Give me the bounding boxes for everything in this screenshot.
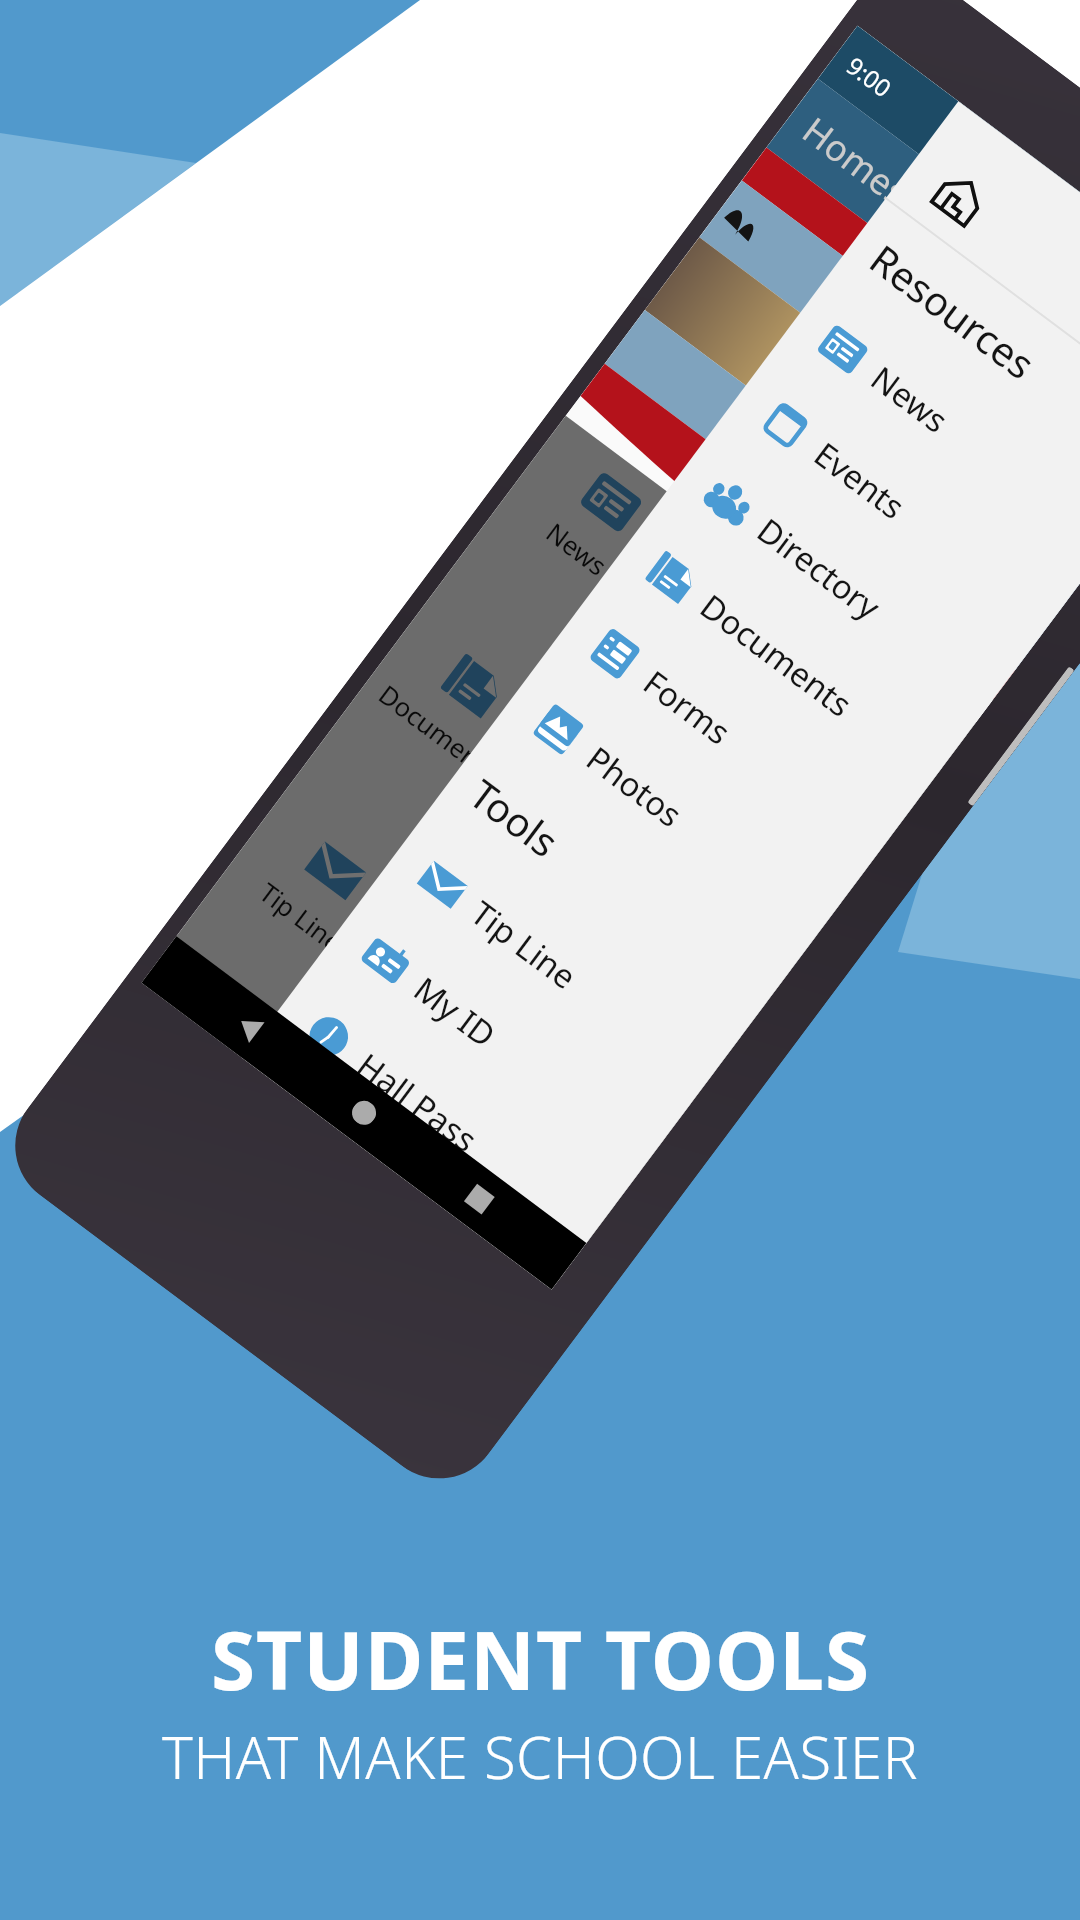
- button[interactable]: News: [770, 277, 1080, 585]
- button[interactable]: News: [493, 427, 698, 619]
- staticText: Events: [805, 432, 914, 529]
- staticText: News: [862, 356, 957, 442]
- button[interactable]: Documents: [355, 611, 560, 803]
- staticText: THAT MAKE SCHOOL EASIER: [162, 1717, 918, 1796]
- button[interactable]: Documents: [599, 506, 965, 813]
- button[interactable]: Back: [207, 985, 292, 1069]
- button[interactable]: Recent apps: [437, 1157, 521, 1241]
- button[interactable]: Directory: [656, 430, 1022, 737]
- staticText: News: [540, 514, 614, 583]
- staticText: HOMESTEAD: [706, 388, 954, 594]
- staticText: Tip Line: [253, 874, 350, 959]
- button[interactable]: Home: [322, 1071, 406, 1155]
- staticText: Documents: [372, 676, 506, 789]
- staticText: Tip Line: [462, 890, 586, 999]
- staticText: Tools: [460, 766, 570, 868]
- staticText: Documents: [692, 584, 861, 726]
- staticText: Hall Pass: [348, 1043, 487, 1162]
- button[interactable]: Events: [713, 354, 1079, 661]
- button[interactable]: My ID: [313, 888, 679, 1196]
- staticText: Homestead: [793, 106, 979, 262]
- staticText: Resources: [860, 232, 1047, 390]
- staticText: Forms: [635, 660, 740, 755]
- button[interactable]: Hall Pass: [256, 964, 622, 1272]
- button[interactable]: Tip Line: [217, 795, 423, 987]
- staticText: Directory: [748, 508, 890, 629]
- button[interactable]: Photos: [485, 658, 851, 965]
- staticText: Cherry Creek School: [857, 306, 1026, 442]
- button[interactable]: Tip Line: [369, 812, 735, 1120]
- button[interactable]: Forms: [542, 582, 908, 889]
- staticText: Photos: [578, 736, 692, 837]
- staticText: My ID: [405, 967, 505, 1057]
- staticText: STUDENT TOOLS: [211, 1604, 870, 1713]
- button[interactable]: Home: [908, 146, 1011, 250]
- staticText: 9:00: [840, 49, 899, 104]
